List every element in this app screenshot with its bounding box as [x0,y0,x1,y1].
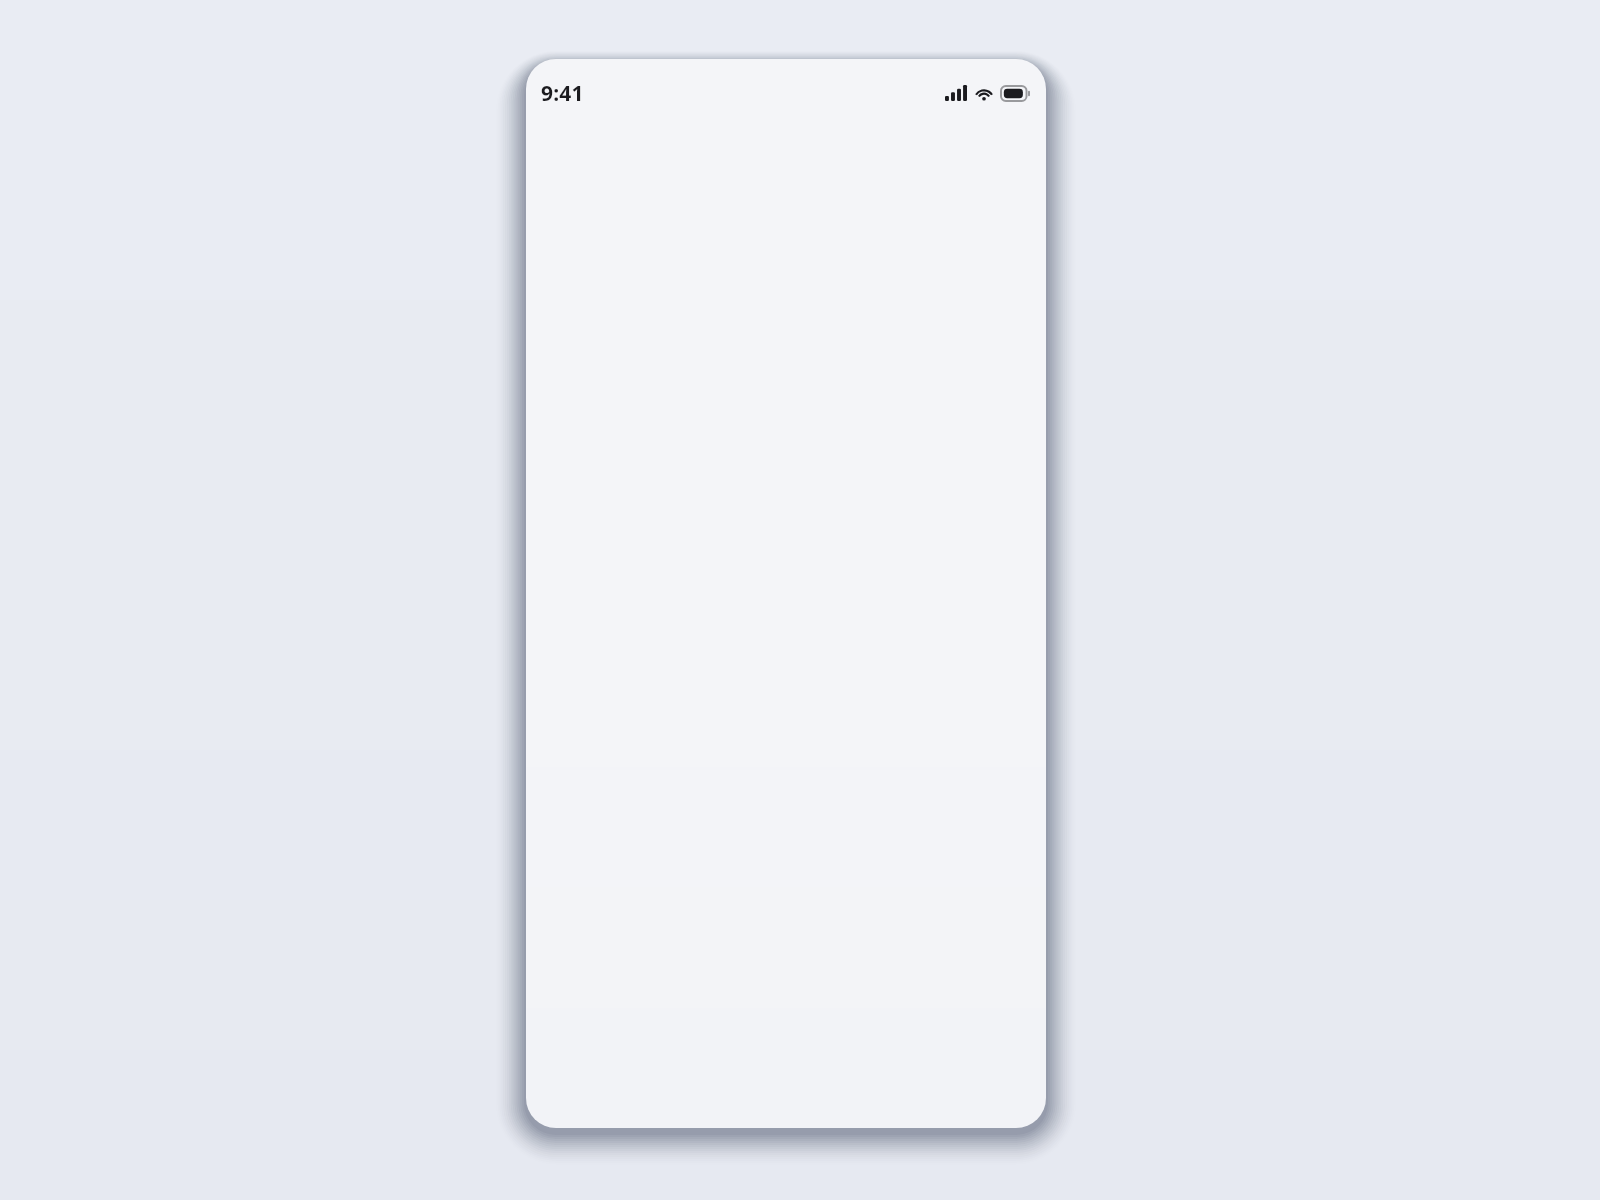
other: Wi-Fi [974,85,994,101]
staticText: 9:41 [541,79,584,108]
other: Battery [1001,86,1030,101]
other: Cellular signal [945,85,967,101]
